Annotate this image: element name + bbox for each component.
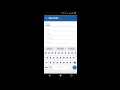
button[interactable]: Name [44, 21, 77, 25]
staticText: b [63, 61, 65, 64]
staticText: Name [44, 21, 50, 24]
staticText: Username [48, 15, 62, 19]
staticText: City [44, 38, 48, 41]
button[interactable]: Home [55, 74, 66, 78]
button[interactable]: Suggestion [44, 47, 55, 51]
staticText: Address [44, 34, 52, 37]
button[interactable]: o [71, 51, 74, 56]
staticText: z [50, 61, 51, 64]
staticText: e [52, 51, 54, 54]
button[interactable]: h [61, 56, 65, 61]
button[interactable]: a [44, 56, 47, 61]
staticText: m [69, 61, 71, 64]
staticText: Email [44, 25, 50, 28]
button[interactable]: e [52, 51, 56, 56]
button[interactable]: v [60, 61, 63, 66]
button[interactable]: i [68, 51, 71, 56]
button[interactable]: Shift [44, 61, 50, 66]
button[interactable]: x [54, 61, 57, 66]
button[interactable]: t [59, 51, 62, 56]
staticText: c [57, 61, 58, 64]
button[interactable]: Emoji [49, 66, 52, 71]
staticText: w [48, 51, 50, 54]
button[interactable]: f [53, 56, 57, 61]
button[interactable]: s [47, 56, 50, 61]
staticText: l [73, 56, 74, 59]
button[interactable]: m [69, 61, 72, 66]
button[interactable]: Suggestion [55, 47, 66, 51]
button[interactable]: Recent apps [66, 74, 77, 78]
staticText: k [69, 56, 71, 59]
staticText: v [60, 61, 62, 64]
button[interactable]: u [65, 51, 68, 56]
staticText: x [54, 61, 56, 64]
staticText: q [44, 51, 46, 54]
button[interactable]: z [50, 61, 54, 66]
button[interactable]: n [66, 61, 69, 66]
staticText: s [47, 56, 48, 59]
button[interactable]: Email [44, 25, 77, 30]
button[interactable]: k [69, 56, 73, 61]
button[interactable]: r [56, 51, 59, 56]
button[interactable]: b [63, 61, 66, 66]
button[interactable]: d [50, 56, 53, 61]
button[interactable]: c [57, 61, 60, 66]
button[interactable]: ?123 [44, 66, 49, 71]
button[interactable]: p [74, 51, 77, 56]
button[interactable]: City [44, 38, 77, 42]
staticText: y [62, 51, 64, 54]
button[interactable]: q [44, 51, 48, 56]
staticText: r [56, 51, 57, 54]
staticText: i [68, 51, 69, 54]
button[interactable]: g [57, 56, 61, 61]
staticText: u [65, 51, 67, 54]
staticText: t [59, 51, 60, 54]
button[interactable]: Username [48, 15, 77, 21]
button[interactable]: Period [69, 66, 72, 71]
staticText: o [71, 51, 73, 54]
staticText: g [57, 56, 59, 59]
button[interactable]: Enter [72, 66, 77, 71]
button[interactable]: Suggestion [66, 47, 77, 51]
button[interactable]: Back [44, 74, 55, 78]
button[interactable]: j [65, 56, 69, 61]
button[interactable]: Address [44, 34, 77, 38]
staticText: p [74, 51, 76, 54]
button[interactable]: Phone [44, 30, 77, 34]
button[interactable]: Space [52, 66, 69, 71]
staticText: ?123 [44, 66, 49, 69]
button[interactable]: Back [44, 15, 48, 21]
staticText: f [53, 56, 54, 59]
button[interactable]: y [62, 51, 65, 56]
button[interactable]: l [73, 56, 77, 61]
staticText: n [66, 61, 68, 64]
staticText: a [44, 56, 46, 59]
staticText: d [50, 56, 52, 59]
button[interactable]: w [48, 51, 52, 56]
button[interactable]: Backspace [72, 61, 77, 66]
